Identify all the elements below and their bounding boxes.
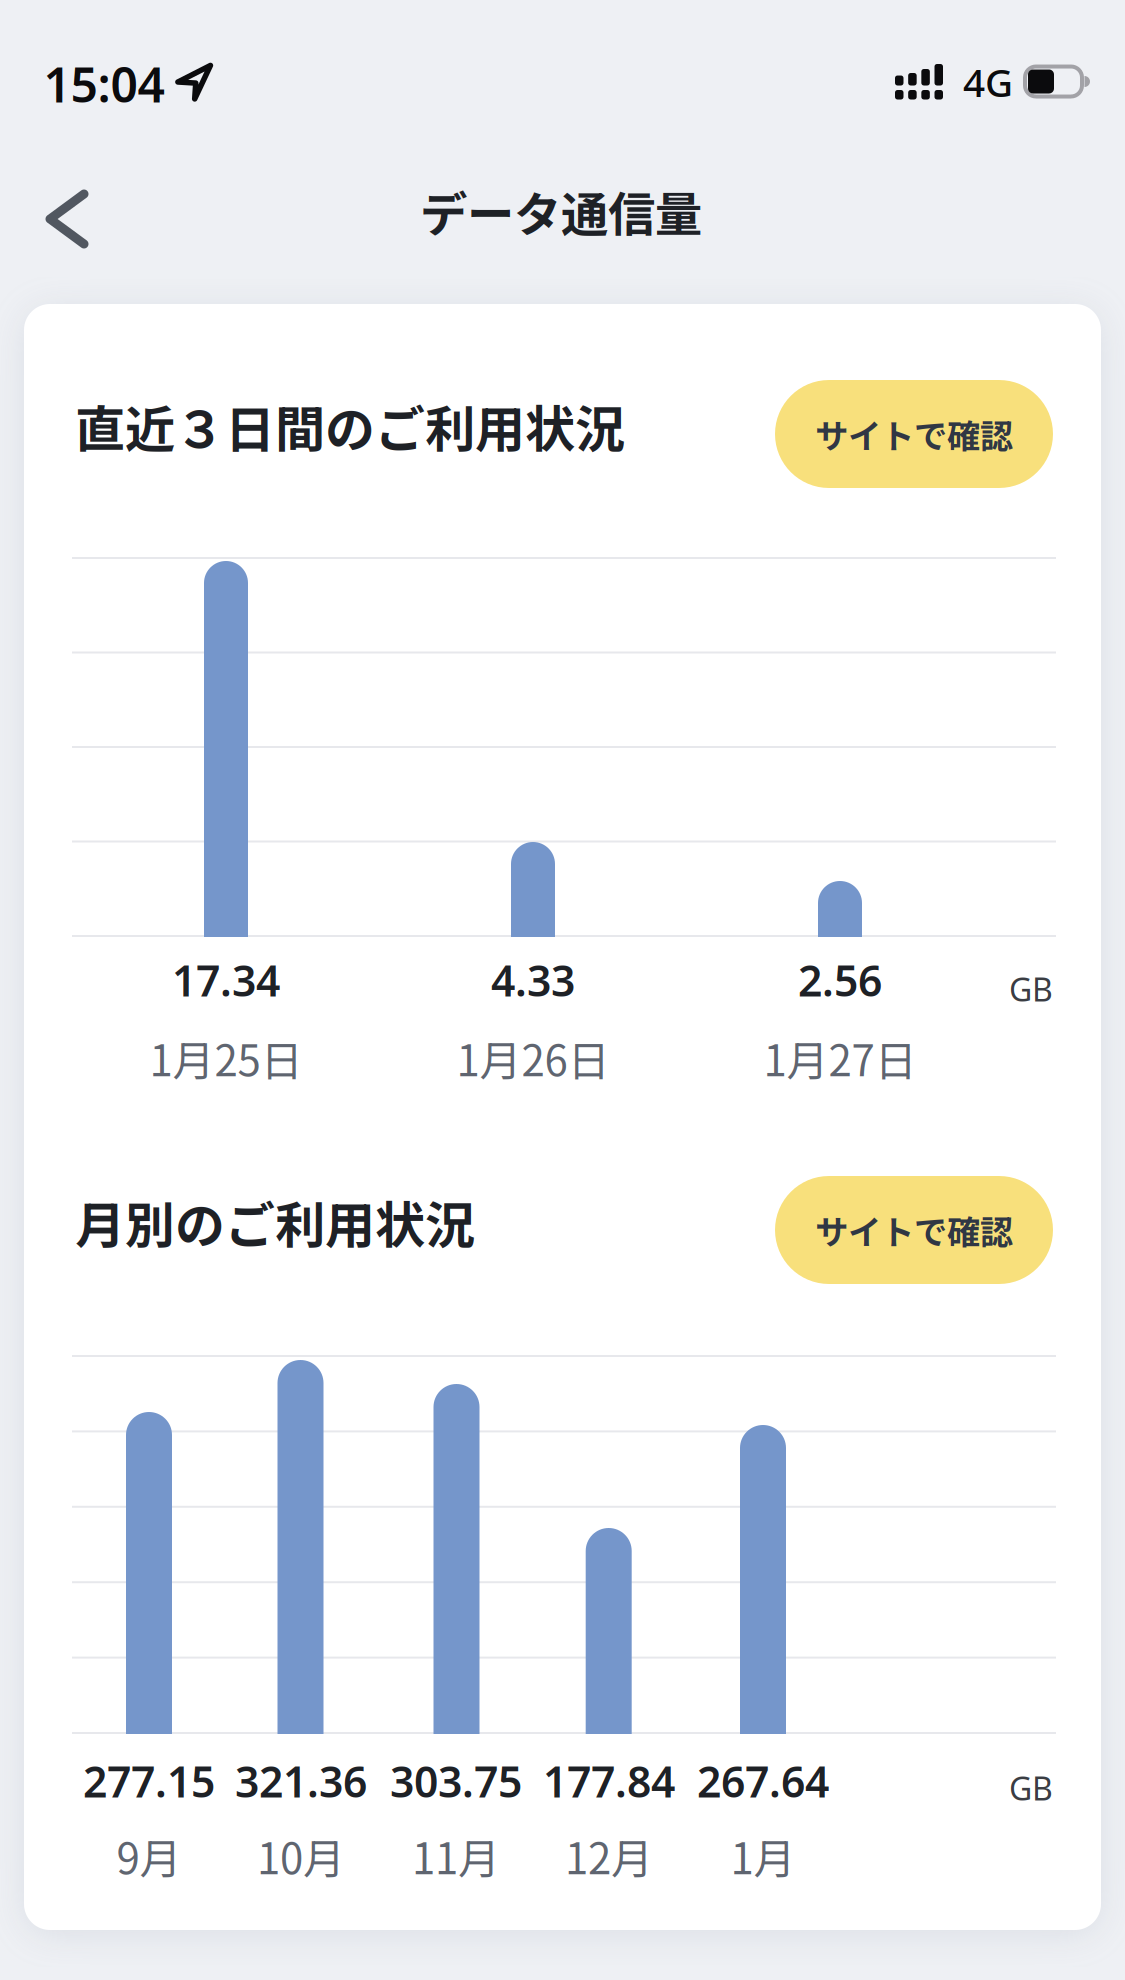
button[interactable]: Back (42, 188, 92, 250)
staticText: 1月 (730, 1826, 795, 1886)
staticText: 1月27日 (763, 1028, 916, 1088)
staticText: 15:04 (43, 52, 164, 116)
staticText: 17.34 (172, 952, 280, 1008)
staticText: GB (1009, 1767, 1053, 1809)
staticText: 10月 (257, 1826, 345, 1886)
staticText: 303.75 (390, 1753, 522, 1809)
staticText: サイトで確認 (815, 410, 1013, 458)
staticText: サイトで確認 (815, 1206, 1013, 1254)
staticText: 9月 (116, 1826, 181, 1886)
staticText: 月別のご利用状況 (75, 1186, 475, 1258)
staticText: 12月 (565, 1826, 653, 1886)
staticText: GB (1009, 968, 1053, 1010)
button[interactable]: サイトで確認 (775, 1176, 1053, 1284)
button[interactable]: サイトで確認 (775, 380, 1053, 488)
staticText: 4.33 (491, 952, 575, 1008)
staticText: 4G (963, 56, 1013, 108)
staticText: 177.84 (543, 1753, 675, 1809)
staticText: 2.56 (798, 952, 882, 1008)
staticText: 1月25日 (149, 1028, 302, 1088)
staticText: 直近３日間のご利用状況 (75, 390, 625, 462)
staticText: 277.15 (83, 1753, 215, 1809)
staticText: 267.64 (697, 1753, 829, 1809)
staticText: 1月26日 (456, 1028, 609, 1088)
staticText: データ通信量 (420, 177, 702, 245)
staticText: 11月 (412, 1826, 500, 1886)
staticText: 321.36 (235, 1753, 367, 1809)
